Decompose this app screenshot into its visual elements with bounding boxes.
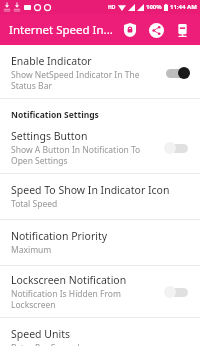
staticText: Notification Is Hidden From Lockscreen — [11, 288, 156, 310]
button[interactable]: Speed To Show In Indicator Icon — [0, 174, 200, 219]
staticText: Show A Button In Notification To Open Se… — [11, 144, 141, 166]
staticText: Bytes Per Second — [11, 342, 80, 346]
staticText: Notification Settings — [11, 109, 99, 121]
staticText: HD — [108, 4, 116, 11]
button[interactable]: Device — [169, 17, 195, 43]
staticText: Show NetSpeed Indicator In The Status Ba… — [11, 69, 140, 91]
button[interactable]: Speed Units — [0, 318, 200, 355]
staticText: Internet Speed In... — [9, 22, 113, 38]
button[interactable]: Notification Priority — [0, 220, 200, 265]
staticText: Enable Indicator — [11, 54, 92, 68]
staticText: Settings Button — [11, 129, 88, 143]
button[interactable]: Settings Button — [0, 126, 200, 173]
button[interactable]: Enable Indicator — [0, 52, 200, 98]
staticText: Lockscreen Notification — [11, 273, 127, 287]
staticText: Speed Units — [11, 327, 70, 341]
staticText: Maximum — [11, 244, 52, 256]
button[interactable]: Toggle off — [162, 284, 192, 300]
staticText: Total Speed — [11, 198, 58, 210]
button[interactable]: Toggle on — [162, 65, 192, 81]
staticText: Notification Priority — [11, 229, 108, 243]
button[interactable]: Privacy — [117, 17, 143, 43]
staticText: Speed To Show In Indicator Icon — [11, 183, 170, 197]
button[interactable]: Share — [143, 17, 169, 43]
staticText: 100% — [146, 3, 162, 11]
staticText: 11:44 AM — [170, 3, 197, 11]
button[interactable]: Toggle off — [162, 140, 192, 156]
button[interactable]: Lockscreen Notification — [0, 266, 200, 317]
